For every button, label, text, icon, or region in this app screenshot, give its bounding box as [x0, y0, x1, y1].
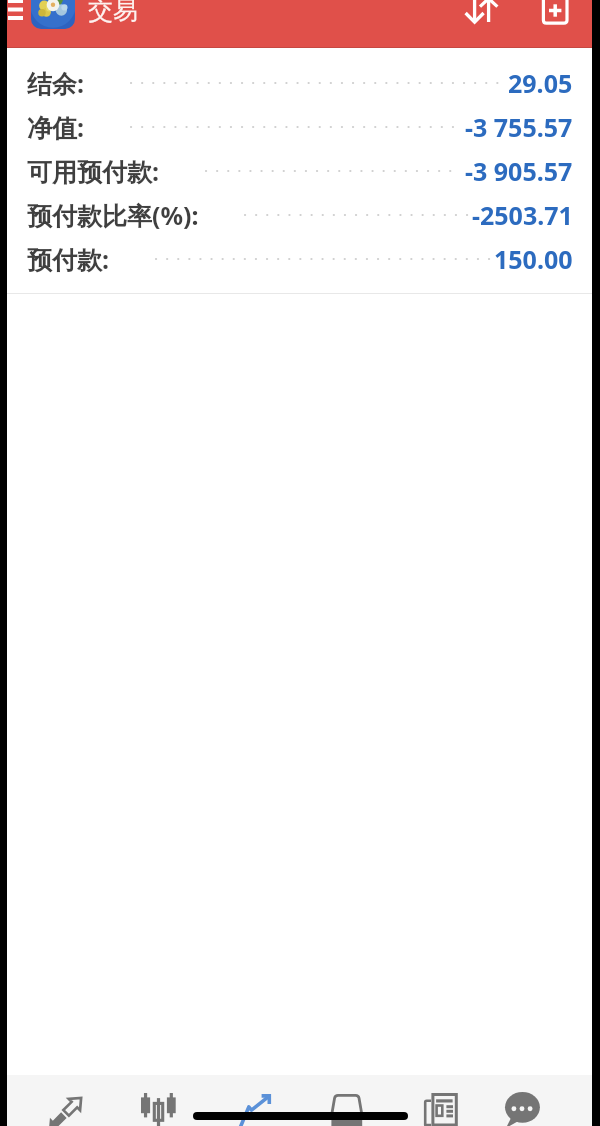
button[interactable]: 净值: — [7, 105, 592, 149]
staticText: 150.00 — [494, 242, 573, 276]
button[interactable]: 预付款: — [7, 237, 592, 281]
staticText: -3 755.57 — [465, 110, 573, 144]
button[interactable]: 结余: — [7, 61, 592, 105]
button[interactable]: News — [411, 1080, 473, 1126]
button[interactable]: 预付款比率(%): — [7, 193, 592, 237]
staticText: -3 905.57 — [465, 154, 573, 188]
button[interactable]: Chat — [493, 1080, 555, 1126]
button[interactable]: Menu — [0, 0, 37, 22]
staticText: 交易 — [88, 0, 138, 26]
button[interactable]: Charts — [127, 1080, 187, 1126]
staticText: 结余: — [27, 66, 85, 100]
button[interactable]: Mailbox — [317, 1080, 379, 1126]
staticText: 可用预付款: — [27, 154, 160, 188]
staticText: 预付款: — [27, 242, 110, 276]
staticText: 预付款比率(%): — [27, 198, 199, 232]
staticText: 29.05 — [508, 66, 573, 100]
staticText: -2503.71 — [472, 198, 573, 232]
button[interactable]: New order — [541, 0, 575, 28]
button[interactable]: Sort — [465, 0, 505, 30]
staticText: 净值: — [27, 110, 85, 144]
button[interactable]: 可用预付款: — [7, 149, 592, 193]
button[interactable]: Quotes — [34, 1080, 98, 1126]
button[interactable]: Trade — [223, 1080, 285, 1126]
